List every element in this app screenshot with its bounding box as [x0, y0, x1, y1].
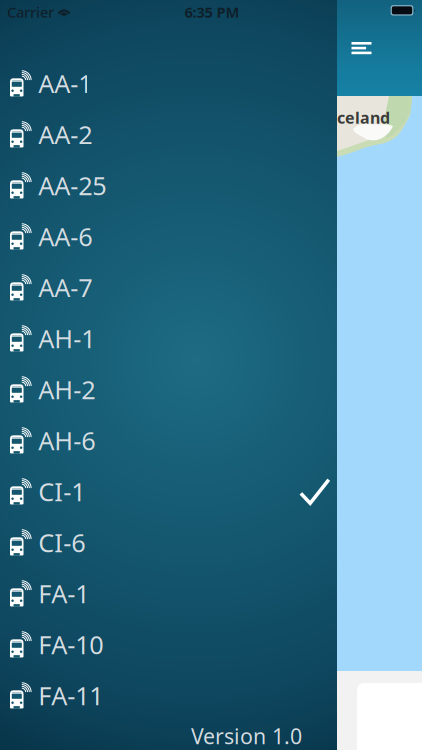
staticText: FA-10	[38, 628, 103, 661]
button[interactable]: FA-10	[0, 619, 337, 670]
staticText: AA-2	[38, 118, 92, 151]
button[interactable]: AH-2	[0, 364, 337, 415]
staticText: AH-1	[38, 322, 95, 355]
staticText: Version 1.0	[191, 722, 302, 750]
button[interactable]: CI-1	[0, 466, 337, 517]
staticText: Carrier	[7, 2, 54, 22]
button[interactable]: AA-1	[0, 58, 337, 109]
button[interactable]: CI-6	[0, 517, 337, 568]
staticText: AA-7	[38, 271, 92, 304]
button[interactable]: FA-11	[0, 670, 337, 721]
staticText: AA-6	[38, 220, 92, 253]
button[interactable]: AH-1	[0, 313, 337, 364]
button[interactable]: AA-2	[0, 109, 337, 160]
button[interactable]: AA-6	[0, 211, 337, 262]
staticText: AA-25	[38, 169, 106, 202]
button[interactable]: AA-25	[0, 160, 337, 211]
staticText: AH-6	[38, 424, 95, 457]
staticText: AH-2	[38, 373, 95, 406]
staticText: FA-11	[38, 679, 103, 712]
staticText: AA-1	[38, 67, 92, 100]
staticText: 6:35 PM	[184, 2, 239, 22]
staticText: CI-1	[38, 475, 85, 508]
button[interactable]: AA-7	[0, 262, 337, 313]
button[interactable]: FA-1	[0, 568, 337, 619]
staticText: CI-6	[38, 526, 85, 559]
staticText: celand	[337, 107, 390, 128]
button[interactable]: AH-6	[0, 415, 337, 466]
button[interactable]: Menu	[337, 0, 391, 84]
staticText: FA-1	[38, 577, 89, 610]
